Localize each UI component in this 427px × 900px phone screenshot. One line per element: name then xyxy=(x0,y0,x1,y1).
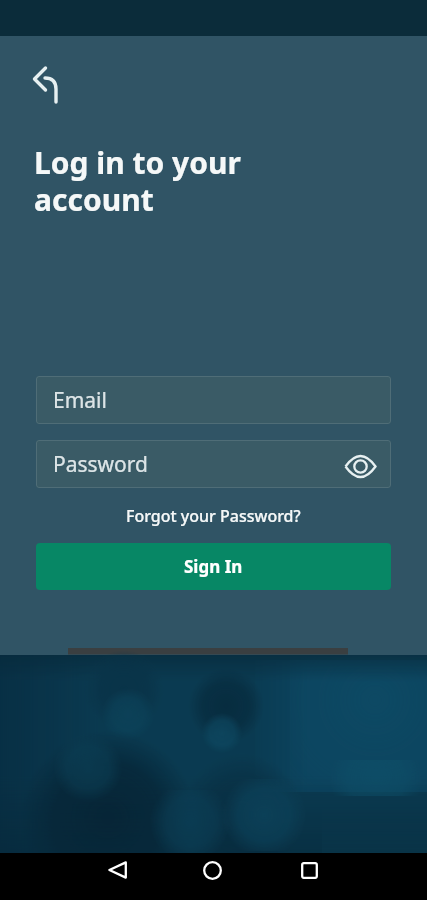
button[interactable]: Password xyxy=(36,440,391,488)
staticText: Forgot your Password? xyxy=(126,505,301,527)
button[interactable]: Email xyxy=(36,376,391,424)
button[interactable] xyxy=(344,448,376,480)
staticText: Password xyxy=(53,450,148,479)
button[interactable] xyxy=(24,63,68,107)
button[interactable]: Sign In xyxy=(36,543,391,590)
button[interactable] xyxy=(289,853,329,893)
button[interactable]: Forgot your Password? xyxy=(0,505,427,527)
staticText: Log in to your account xyxy=(34,142,241,220)
staticText: Sign In xyxy=(184,555,243,578)
button[interactable] xyxy=(97,853,137,893)
staticText: Email xyxy=(53,386,107,415)
button[interactable] xyxy=(192,853,232,893)
